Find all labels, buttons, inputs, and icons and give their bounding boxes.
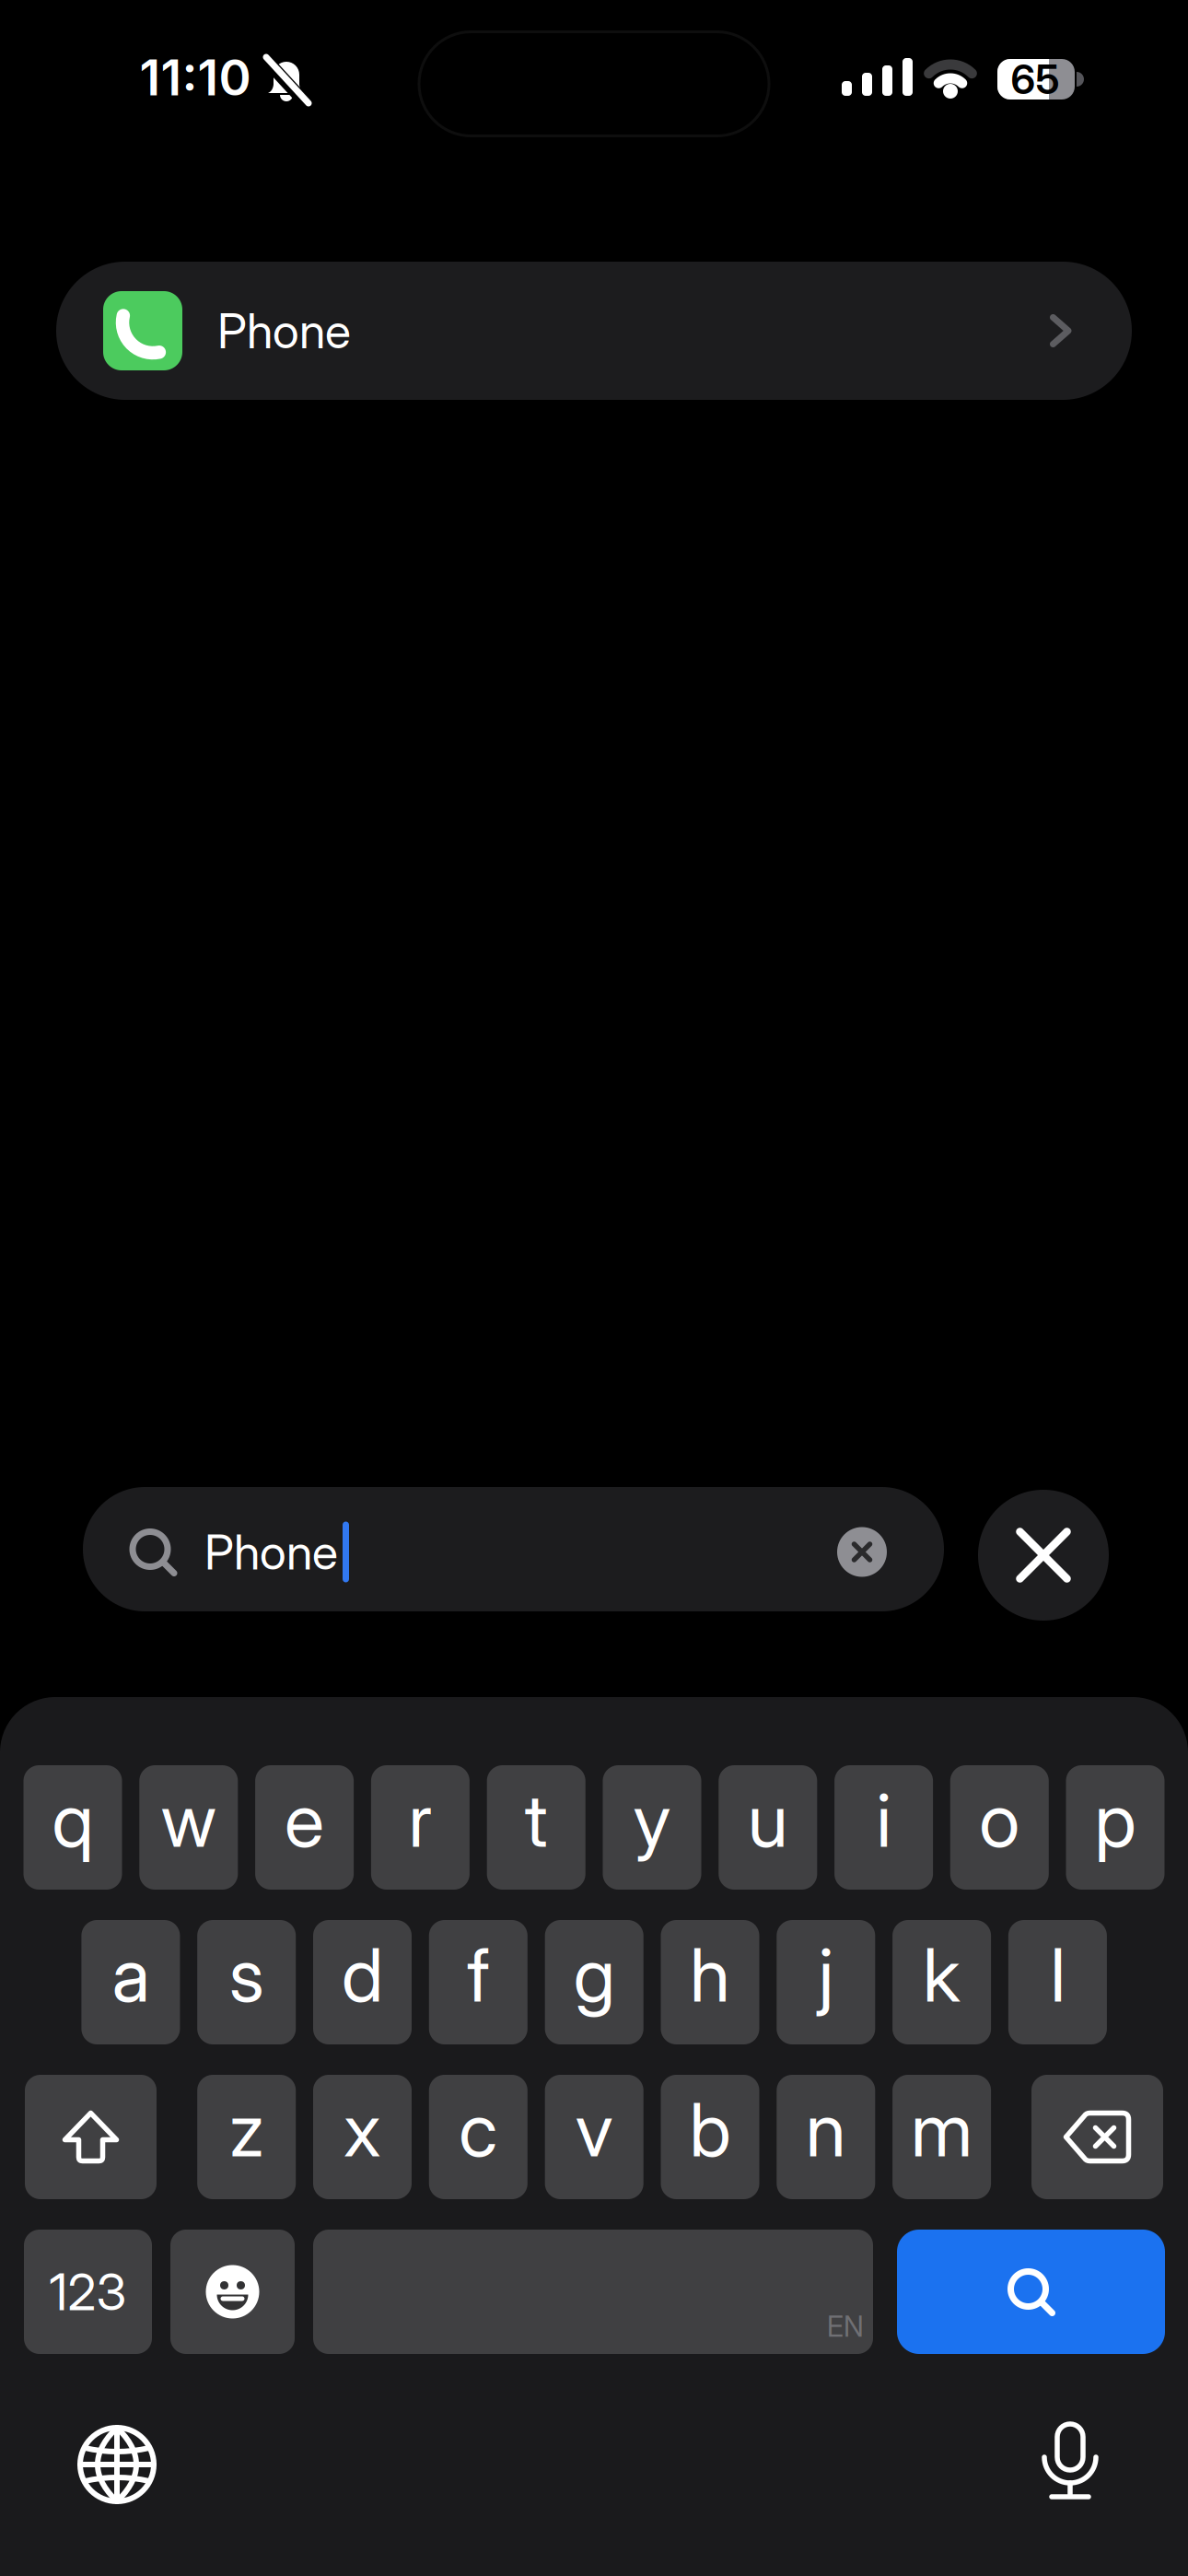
staticText: e: [285, 1775, 324, 1865]
staticText: z: [229, 2085, 264, 2174]
staticText: Phone: [217, 302, 351, 360]
button[interactable]: m: [892, 2075, 991, 2199]
button[interactable]: v: [545, 2075, 643, 2199]
button[interactable]: t: [487, 1765, 585, 1890]
button[interactable]: Next keyboard: [77, 2425, 157, 2504]
staticText: p: [1095, 1775, 1136, 1865]
button[interactable]: 123: [24, 2230, 152, 2354]
button[interactable]: l: [1008, 1920, 1107, 2044]
button[interactable]: Space: [313, 2230, 873, 2354]
button[interactable]: Search: [897, 2230, 1165, 2354]
staticText: i: [876, 1775, 891, 1865]
button[interactable]: f: [429, 1920, 528, 2044]
button[interactable]: h: [661, 1920, 759, 2044]
staticText: a: [112, 1930, 150, 2019]
button[interactable]: s: [197, 1920, 296, 2044]
button[interactable]: x: [313, 2075, 412, 2199]
button[interactable]: i: [834, 1765, 933, 1890]
staticText: h: [690, 1930, 730, 2019]
staticText: g: [573, 1930, 615, 2019]
staticText: n: [806, 2085, 846, 2174]
staticText: r: [408, 1775, 432, 1865]
button[interactable]: e: [255, 1765, 354, 1890]
button[interactable]: d: [313, 1920, 412, 2044]
button[interactable]: z: [197, 2075, 296, 2199]
staticText: f: [467, 1930, 489, 2019]
button[interactable]: Dictation: [1042, 2422, 1098, 2500]
staticText: t: [525, 1775, 548, 1865]
button[interactable]: u: [719, 1765, 817, 1890]
staticText: v: [575, 2085, 613, 2174]
staticText: d: [342, 1930, 383, 2019]
button[interactable]: Close search: [978, 1490, 1109, 1621]
button[interactable]: b: [661, 2075, 759, 2199]
button[interactable]: w: [139, 1765, 238, 1890]
staticText: 65: [1011, 55, 1060, 104]
staticText: w: [161, 1775, 216, 1865]
staticText: k: [923, 1930, 961, 2019]
staticText: q: [52, 1775, 93, 1865]
button[interactable]: y: [603, 1765, 701, 1890]
button[interactable]: q: [23, 1765, 122, 1890]
button[interactable]: r: [371, 1765, 470, 1890]
staticText: m: [911, 2085, 973, 2174]
button[interactable]: p: [1066, 1765, 1165, 1890]
button[interactable]: o: [950, 1765, 1049, 1890]
staticText: o: [979, 1775, 1020, 1865]
button[interactable]: Emoji: [170, 2230, 295, 2354]
button[interactable]: n: [777, 2075, 875, 2199]
button[interactable]: j: [777, 1920, 875, 2044]
button[interactable]: k: [892, 1920, 991, 2044]
button[interactable]: Delete: [1031, 2075, 1163, 2199]
button[interactable]: Shift: [25, 2075, 157, 2199]
button[interactable]: Clear text: [837, 1527, 887, 1577]
staticText: 123: [49, 2261, 127, 2322]
button[interactable]: c: [429, 2075, 528, 2199]
staticText: y: [633, 1775, 671, 1865]
button[interactable]: a: [81, 1920, 180, 2044]
button[interactable]: Phone: [56, 262, 1132, 400]
staticText: s: [229, 1930, 264, 2019]
button[interactable]: g: [545, 1920, 643, 2044]
staticText: EN: [827, 2309, 864, 2343]
staticText: u: [748, 1775, 788, 1865]
staticText: 11:10: [140, 48, 251, 107]
staticText: b: [689, 2085, 731, 2174]
staticText: j: [819, 1930, 833, 2019]
staticText: x: [344, 2085, 381, 2174]
staticText: l: [1050, 1930, 1065, 2019]
staticText: Phone: [204, 1523, 338, 1581]
staticText: c: [459, 2085, 498, 2174]
